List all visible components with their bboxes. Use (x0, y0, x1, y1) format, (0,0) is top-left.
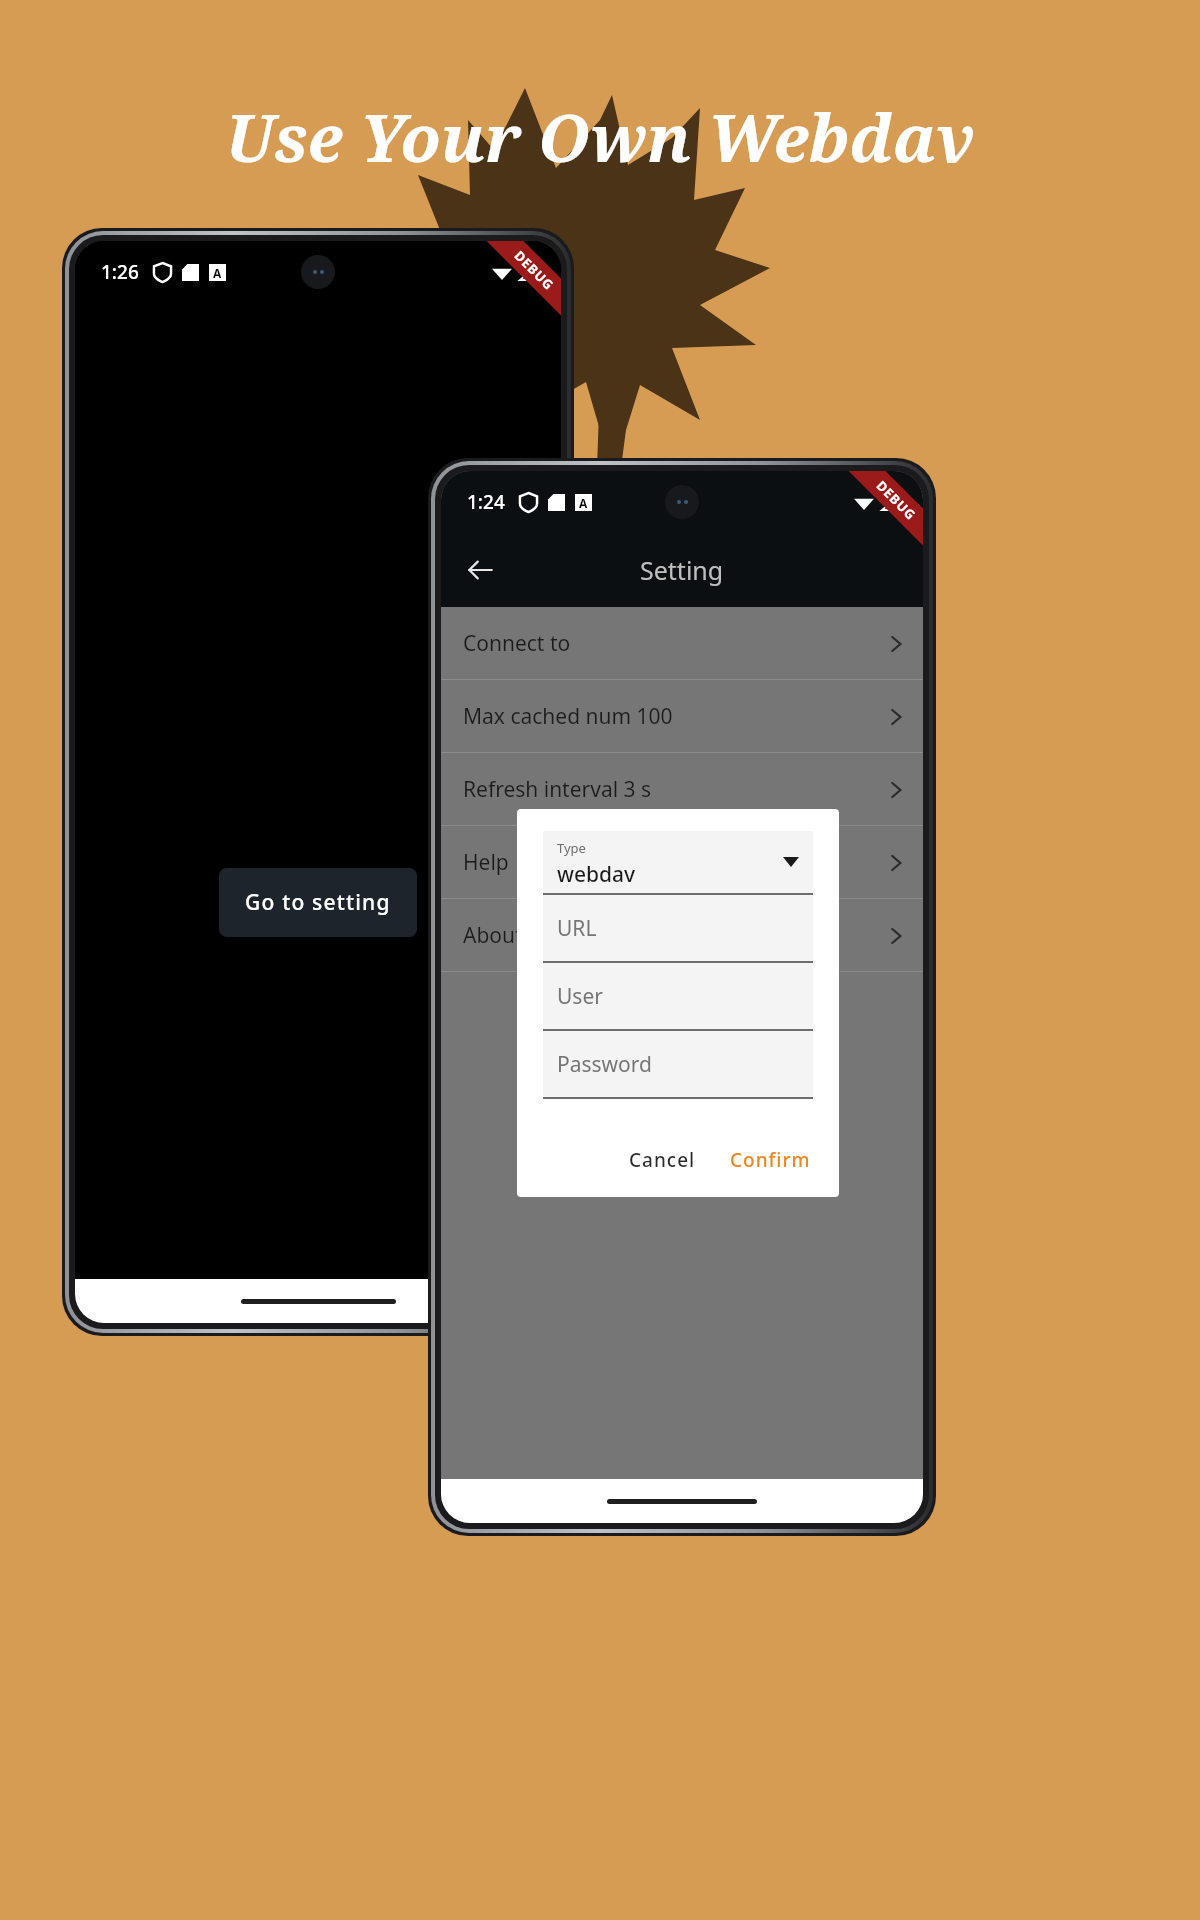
staticText: 1:24 (467, 489, 505, 515)
staticText: Use Your Own Webdav (225, 92, 975, 181)
staticText: URL (557, 914, 597, 943)
staticText: Max cached num 100 (463, 702, 673, 731)
button[interactable]: Connect to (441, 607, 923, 680)
staticText: Go to setting (245, 888, 391, 917)
button[interactable]: User (543, 963, 813, 1029)
button[interactable]: Password (543, 1031, 813, 1097)
staticText: 1:26 (101, 259, 139, 285)
staticText: Connect to (463, 629, 571, 658)
staticText: Cancel (629, 1147, 696, 1173)
staticText: Refresh interval 3 s (463, 775, 652, 804)
staticText: DEBUG (873, 477, 920, 524)
staticText: Help (463, 848, 509, 877)
staticText: Setting (640, 553, 724, 587)
button[interactable]: URL (543, 895, 813, 961)
button[interactable]: Type (543, 831, 813, 893)
staticText: DEBUG (511, 247, 558, 294)
staticText: About (463, 921, 523, 950)
button[interactable]: About (441, 899, 923, 972)
button[interactable]: Go to setting (219, 868, 417, 937)
button[interactable]: Help (441, 826, 923, 899)
staticText: Password (557, 1050, 652, 1079)
staticText: A (213, 265, 222, 281)
button[interactable]: Cancel (615, 1137, 710, 1183)
staticText: User (557, 982, 603, 1011)
staticText: webdav (557, 860, 636, 889)
button[interactable]: Max cached num 100 (441, 680, 923, 753)
staticText: Type (557, 839, 586, 857)
button[interactable]: Refresh interval 3 s (441, 753, 923, 826)
staticText: A (579, 495, 588, 511)
staticText: Confirm (730, 1147, 811, 1173)
button[interactable]: Back (455, 545, 505, 595)
button[interactable]: Confirm (718, 1137, 823, 1183)
